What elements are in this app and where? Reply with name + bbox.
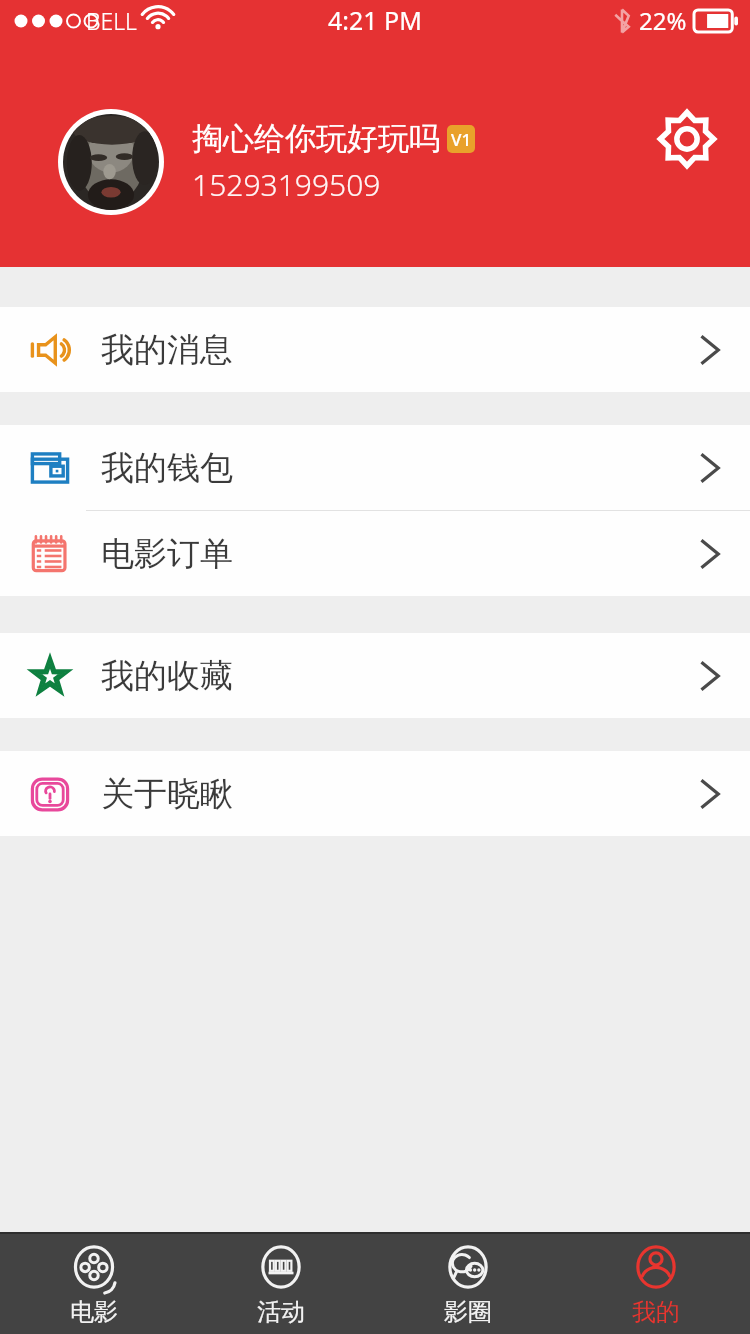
button[interactable]: 我的收藏 [0, 633, 750, 718]
button[interactable]: 掏心给你玩好玩吗 [58, 109, 475, 215]
staticText: 22% [639, 4, 687, 37]
staticText: 电影订单 [101, 533, 233, 575]
button[interactable]: 我的消息 [0, 307, 750, 392]
staticText: 4:21 PM [328, 3, 422, 37]
button[interactable]: 关于晓瞅 [0, 751, 750, 836]
button[interactable]: 活动 [187, 1234, 374, 1334]
staticText: 我的收藏 [101, 655, 233, 697]
staticText: 活动 [257, 1297, 305, 1327]
button[interactable]: 电影订单 [0, 511, 750, 596]
button[interactable]: Settings [656, 108, 718, 170]
staticText: 关于晓瞅 [101, 773, 233, 815]
button[interactable]: 电影 [0, 1234, 187, 1334]
button[interactable]: 影圈 [374, 1234, 562, 1334]
staticText: 我的 [632, 1297, 680, 1327]
button[interactable]: 我的 [562, 1234, 750, 1334]
button[interactable]: 我的钱包 [0, 425, 750, 510]
staticText: 掏心给你玩好玩吗 [192, 119, 440, 158]
staticText: BELL [86, 5, 137, 36]
staticText: 影圈 [444, 1297, 492, 1327]
staticText: 我的消息 [101, 329, 233, 371]
staticText: 我的钱包 [101, 447, 233, 489]
staticText: 电影 [70, 1297, 118, 1327]
staticText: 15293199509 [192, 164, 381, 205]
staticText: V1 [451, 128, 472, 151]
